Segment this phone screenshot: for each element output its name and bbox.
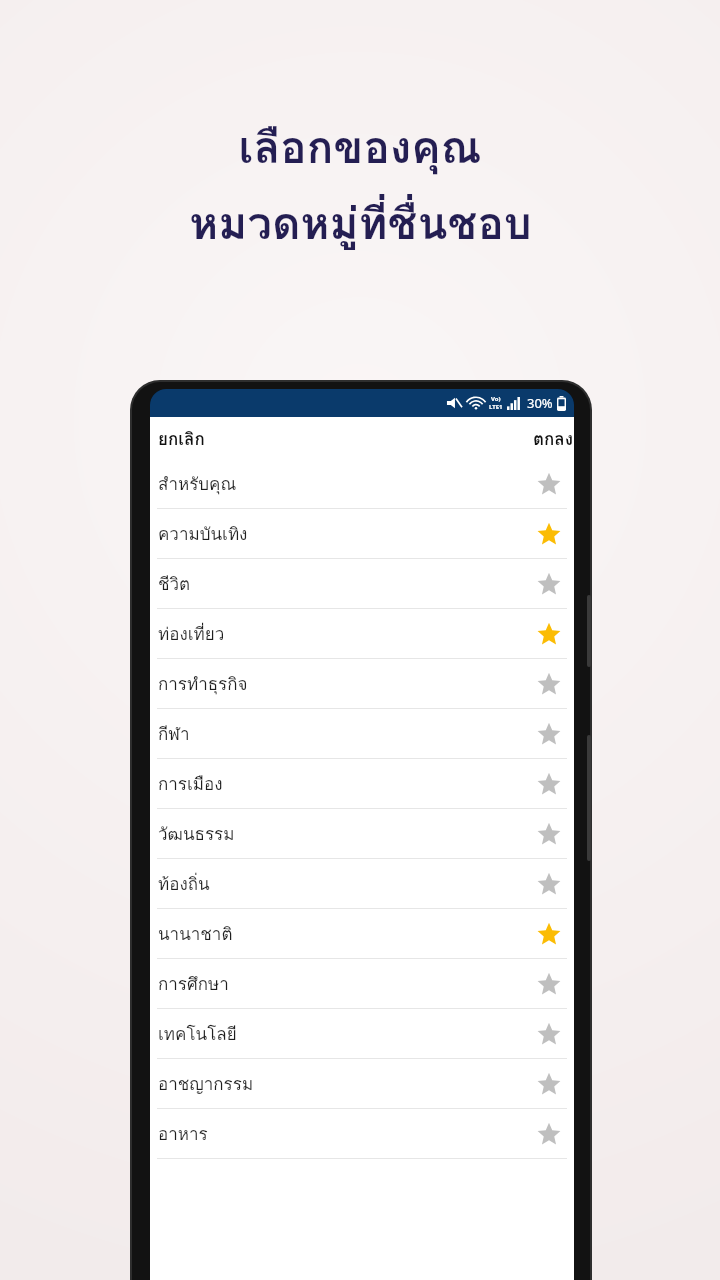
button[interactable]: Unfavorite นานาชาติ — [532, 917, 566, 951]
staticText: Vo) — [491, 395, 501, 403]
button[interactable]: วัฒนธรรม — [150, 809, 574, 859]
staticText: ชีวิต — [158, 570, 532, 597]
staticText: หมวดหมู่ที่ชื่นชอบ — [189, 188, 532, 258]
staticText: วัฒนธรรม — [158, 820, 532, 847]
button[interactable]: ยกเลิก — [150, 417, 213, 459]
button[interactable]: Favorite ชีวิต — [532, 567, 566, 601]
button[interactable]: การเมือง — [150, 759, 574, 809]
staticText: สำหรับคุณ — [158, 470, 532, 497]
staticText: นานาชาติ — [158, 920, 532, 947]
button[interactable]: Favorite การศึกษา — [532, 967, 566, 1001]
staticText: ความบันเทิง — [158, 520, 532, 547]
button[interactable]: ชีวิต — [150, 559, 574, 609]
button[interactable]: เทคโนโลยี — [150, 1009, 574, 1059]
staticText: ท้องถิ่น — [158, 870, 532, 897]
button[interactable]: Favorite การเมือง — [532, 767, 566, 801]
button[interactable]: Favorite กีฬา — [532, 717, 566, 751]
button[interactable]: ตกลง — [525, 417, 574, 459]
staticText: การทำธุรกิจ — [158, 670, 532, 697]
staticText: การศึกษา — [158, 970, 532, 997]
button[interactable]: Favorite การทำธุรกิจ — [532, 667, 566, 701]
button[interactable]: Unfavorite ท่องเที่ยว — [532, 617, 566, 651]
staticText: 30% — [527, 394, 553, 412]
button[interactable]: อาหาร — [150, 1109, 574, 1159]
button[interactable]: Favorite วัฒนธรรม — [532, 817, 566, 851]
staticText: ตกลง — [533, 425, 574, 452]
button[interactable]: Favorite เทคโนโลยี — [532, 1017, 566, 1051]
button[interactable]: อาชญากรรม — [150, 1059, 574, 1109]
button[interactable]: Favorite สำหรับคุณ — [532, 467, 566, 501]
staticText: กีฬา — [158, 720, 532, 747]
button[interactable]: สำหรับคุณ — [150, 459, 574, 509]
button[interactable]: Favorite ท้องถิ่น — [532, 867, 566, 901]
button[interactable]: กีฬา — [150, 709, 574, 759]
button[interactable]: ท่องเที่ยว — [150, 609, 574, 659]
staticText: ยกเลิก — [158, 425, 205, 452]
staticText: การเมือง — [158, 770, 532, 797]
staticText: เทคโนโลยี — [158, 1020, 532, 1047]
staticText: เลือกของคุณ — [238, 112, 482, 182]
button[interactable]: ท้องถิ่น — [150, 859, 574, 909]
button[interactable]: นานาชาติ — [150, 909, 574, 959]
button[interactable]: การศึกษา — [150, 959, 574, 1009]
staticText: อาชญากรรม — [158, 1070, 532, 1097]
staticText: LTE1 — [489, 403, 503, 411]
button[interactable]: Unfavorite ความบันเทิง — [532, 517, 566, 551]
staticText: ท่องเที่ยว — [158, 620, 532, 647]
staticText: อาหาร — [158, 1120, 532, 1147]
button[interactable]: การทำธุรกิจ — [150, 659, 574, 709]
button[interactable]: Favorite อาหาร — [532, 1117, 566, 1151]
button[interactable]: Favorite อาชญากรรม — [532, 1067, 566, 1101]
button[interactable]: ความบันเทิง — [150, 509, 574, 559]
